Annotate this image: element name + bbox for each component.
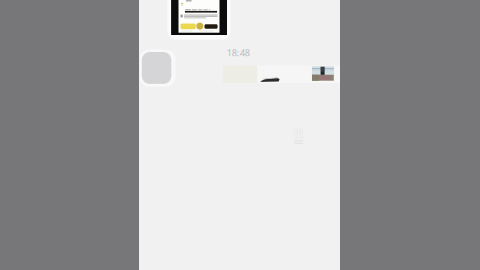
- button[interactable]: Photo attachment: [140, 49, 175, 87]
- staticText: 18:48: [227, 46, 250, 59]
- button[interactable]: [167, 0, 231, 40]
